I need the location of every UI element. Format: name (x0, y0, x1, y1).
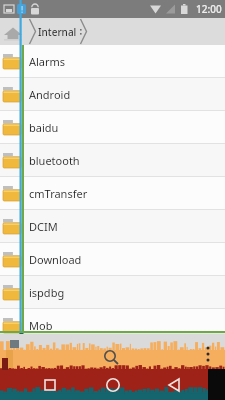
staticText: Android (29, 87, 71, 102)
staticText: baidu (29, 120, 59, 135)
button[interactable]: Alarms (0, 45, 225, 77)
staticText: Download (29, 252, 82, 267)
button[interactable]: bluetooth (0, 144, 225, 176)
button[interactable]: Android (0, 78, 225, 110)
button[interactable]: Search (100, 347, 122, 369)
staticText: ispdbg (29, 285, 65, 300)
button[interactable]: ispdbg (0, 276, 225, 308)
button[interactable]: Mob (0, 309, 225, 341)
button[interactable]: Internal (38, 25, 83, 39)
button[interactable]: cmTransfer (0, 177, 225, 209)
button[interactable]: DCIM (0, 210, 225, 242)
button[interactable]: Back (162, 372, 188, 396)
button[interactable]: Home (100, 372, 126, 396)
button[interactable]: Home (0, 19, 26, 45)
staticText: 12:00 (196, 2, 222, 16)
button[interactable]: baidu (0, 111, 225, 143)
staticText: Mob (29, 318, 53, 333)
button[interactable]: More options (200, 344, 216, 366)
staticText: bluetooth (29, 153, 80, 168)
button[interactable]: Download (0, 243, 225, 275)
staticText: cmTransfer (29, 186, 88, 201)
staticText: Alarms (29, 54, 66, 69)
button[interactable]: Recents (37, 372, 63, 396)
staticText: DCIM (29, 219, 58, 234)
staticText: Internal (38, 25, 77, 39)
